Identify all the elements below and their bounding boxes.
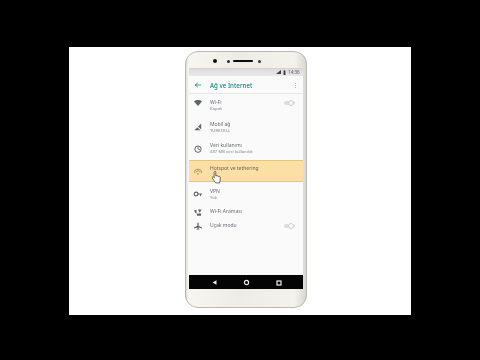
staticText: Veri kullanımı: [210, 142, 242, 149]
staticText: Hotspot ve tethering: [210, 165, 259, 172]
staticText: Wi-Fi Araması: [210, 208, 242, 215]
staticText: Wi-Fi: [210, 99, 222, 106]
staticText: Mobil ağ: [210, 121, 231, 128]
staticText: Ağ ve İnternet: [210, 81, 253, 89]
button[interactable]: Mobil ağ: [189, 115, 303, 137]
button[interactable]: Recent apps: [272, 276, 285, 289]
staticText: Yok: [210, 194, 218, 200]
button[interactable]: Wi-Fi: [189, 91, 303, 113]
staticText: 14:36: [288, 69, 300, 75]
button[interactable]: Uçak modu: [189, 214, 303, 236]
staticText: 487 MB veri kullanıldı: [210, 148, 253, 154]
button[interactable]: Hotspot ve tethering: [189, 160, 303, 182]
button[interactable]: Back: [192, 79, 203, 90]
staticText: TURKCELL: [210, 127, 231, 133]
button[interactable]: Back: [208, 276, 221, 289]
button[interactable]: Toggle Uçak modu: [283, 222, 297, 229]
button[interactable]: Toggle Wi-Fi: [283, 99, 297, 106]
button[interactable]: Veri kullanımı: [189, 137, 303, 159]
button[interactable]: VPN: [189, 182, 303, 204]
staticText: Uçak modu: [210, 222, 237, 229]
staticText: Kapalı: [210, 105, 223, 111]
button[interactable]: More options: [290, 80, 300, 90]
button[interactable]: Home: [240, 276, 253, 289]
staticText: VPN: [210, 188, 220, 195]
button[interactable]: Wi-Fi Araması: [189, 200, 303, 222]
